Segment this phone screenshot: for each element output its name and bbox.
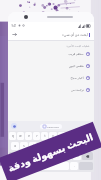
button[interactable]: p	[85, 132, 93, 140]
button[interactable]: .	[70, 162, 78, 170]
button[interactable]: r	[33, 132, 40, 140]
button[interactable]: b	[55, 152, 63, 160]
button[interactable]: Shift	[9, 152, 19, 160]
button[interactable]: e	[25, 132, 32, 140]
button[interactable]: Assistant	[11, 123, 17, 129]
staticText: v	[49, 154, 51, 158]
button[interactable]: Submit search	[8, 29, 94, 40]
staticText: d	[32, 144, 34, 148]
staticText: e	[28, 134, 30, 138]
button[interactable]: l	[83, 142, 91, 150]
button[interactable]: w	[17, 132, 24, 140]
button[interactable]: Backspace	[82, 152, 93, 160]
button[interactable]: Paste text	[40, 124, 62, 129]
staticText: a	[14, 144, 16, 148]
button[interactable]: Voice input	[86, 124, 91, 129]
button[interactable]: a	[11, 142, 19, 150]
staticText: .	[74, 164, 75, 168]
button[interactable]: n	[64, 152, 72, 160]
staticText: البحث بسهولة ودقة	[6, 130, 95, 175]
staticText: q	[12, 134, 14, 138]
button[interactable]: s	[20, 142, 28, 150]
button[interactable]: x	[28, 152, 36, 160]
staticText: t	[44, 134, 46, 138]
button[interactable]: d	[29, 142, 37, 150]
button[interactable]: f	[38, 142, 46, 150]
button[interactable]: أخبار صباح	[8, 72, 90, 84]
button[interactable]: c	[37, 152, 45, 160]
button[interactable]: q	[9, 132, 16, 140]
button[interactable]: ترجمة نص	[8, 84, 90, 96]
staticText: k	[77, 144, 79, 148]
staticText: عمليات البحث الأخيرة	[66, 44, 90, 48]
button[interactable]: m	[73, 152, 81, 160]
button[interactable]: u	[58, 132, 66, 140]
button[interactable]: ?123	[9, 162, 22, 170]
staticText: s	[23, 144, 25, 148]
button[interactable]: Space	[32, 162, 69, 170]
staticText: Paste text	[47, 125, 59, 128]
button[interactable]: h	[56, 142, 64, 150]
staticText: مطعم قريب	[68, 52, 84, 56]
button[interactable]: مطعم قريب	[8, 48, 90, 60]
staticText: m	[76, 154, 79, 158]
other: Submit search	[12, 32, 17, 37]
staticText: ترجمة نص	[71, 88, 84, 92]
staticText: طقس اليوم	[69, 64, 84, 68]
button[interactable]: k	[74, 142, 82, 150]
staticText: y	[52, 134, 54, 138]
staticText: c	[40, 154, 42, 158]
staticText: w	[19, 134, 22, 138]
button[interactable]: j	[65, 142, 73, 150]
button[interactable]: v	[46, 152, 54, 160]
button[interactable]: Emoji	[23, 162, 31, 170]
staticText: 9:41	[11, 24, 17, 28]
staticText: r	[36, 134, 38, 138]
staticText: p	[88, 134, 90, 138]
button[interactable]: y	[49, 132, 57, 140]
staticText: j	[69, 144, 70, 148]
staticText: ?123	[13, 165, 18, 168]
button[interactable]: t	[41, 132, 48, 140]
button[interactable]: طقس اليوم	[8, 60, 90, 72]
staticText: ابحث عن أي شيء	[62, 32, 88, 37]
staticText: أخبار صباح	[70, 76, 84, 80]
